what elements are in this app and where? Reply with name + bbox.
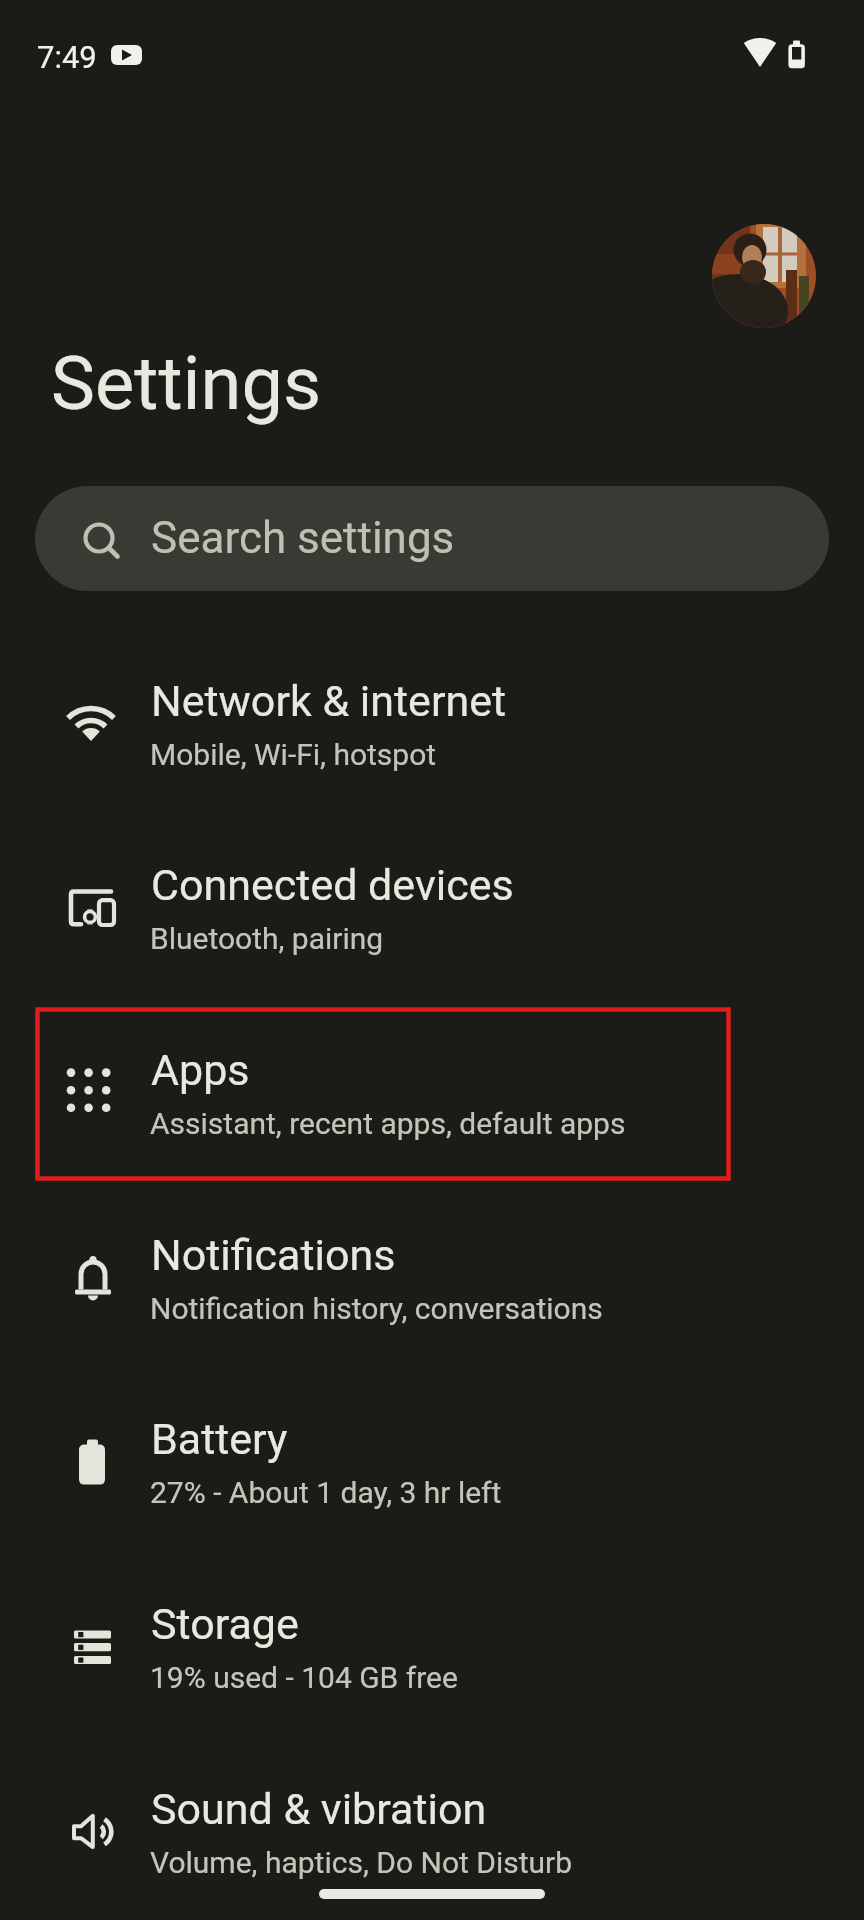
staticText: Apps: [151, 1045, 250, 1095]
staticText: Mobile, Wi-Fi, hotspot: [150, 737, 437, 772]
button[interactable]: Connected devices: [0, 820, 864, 1005]
staticText: Network & internet: [151, 676, 507, 726]
button[interactable]: Sound & vibration: [0, 1744, 864, 1920]
button[interactable]: Network & internet: [0, 636, 864, 821]
staticText: Connected devices: [151, 860, 514, 910]
staticText: Notification history, conversations: [150, 1291, 603, 1326]
button[interactable]: Apps: [0, 1005, 864, 1190]
staticText: 27% - About 1 day, 3 hr left: [150, 1475, 502, 1510]
staticText: Storage: [151, 1599, 299, 1649]
staticText: 7:49: [37, 39, 97, 75]
button[interactable]: Search settings: [35, 486, 829, 591]
button[interactable]: [712, 224, 816, 328]
staticText: Notifications: [151, 1230, 396, 1280]
button[interactable]: Notifications: [0, 1190, 864, 1375]
staticText: Settings: [51, 340, 322, 427]
staticText: Assistant, recent apps, default apps: [150, 1106, 626, 1141]
button[interactable]: Battery: [0, 1374, 864, 1559]
staticText: Volume, haptics, Do Not Disturb: [150, 1845, 573, 1880]
staticText: Bluetooth, pairing: [150, 921, 384, 956]
button[interactable]: Storage: [0, 1559, 864, 1744]
staticText: 19% used - 104 GB free: [150, 1660, 458, 1695]
staticText: Battery: [151, 1414, 288, 1464]
staticText: Sound & vibration: [151, 1784, 487, 1834]
staticText: Search settings: [151, 512, 455, 564]
